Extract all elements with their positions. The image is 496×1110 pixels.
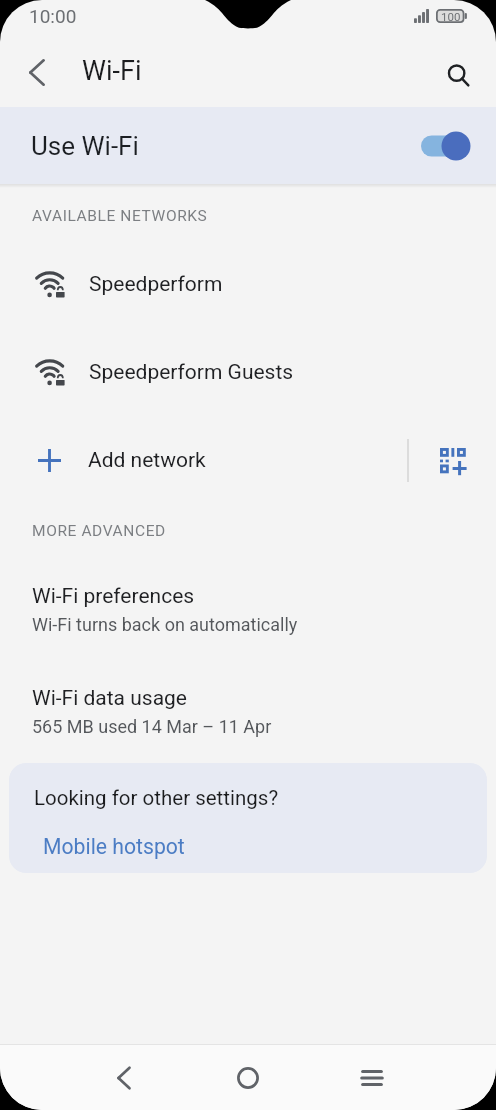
staticText: Mobile hotspot [43, 834, 185, 859]
button[interactable]: Speedperform [0, 240, 496, 328]
staticText: Wi-Fi preferences [32, 584, 195, 609]
staticText: Use Wi-Fi [31, 131, 421, 161]
staticText: Wi-Fi turns back on automatically [32, 614, 298, 635]
button[interactable]: Scan QR code to add network [409, 416, 496, 504]
button[interactable]: Looking for other settings? [9, 763, 487, 873]
staticText: Speedperform [89, 272, 223, 297]
button[interactable]: Home [216, 1045, 280, 1110]
staticText: 565 MB used 14 Mar – 11 Apr [32, 716, 272, 737]
button[interactable]: Speedperform Guests [0, 328, 496, 416]
staticText: 10:00 [29, 5, 77, 27]
staticText: Wi-Fi [82, 55, 142, 87]
staticText: MORE ADVANCED [32, 522, 166, 540]
button[interactable]: Wi-Fi data usage [0, 660, 496, 762]
staticText: Looking for other settings? [34, 786, 279, 810]
button[interactable]: Recent apps [340, 1045, 404, 1110]
staticText: AVAILABLE NETWORKS [32, 207, 208, 225]
button[interactable]: Add network [0, 416, 407, 504]
button[interactable]: Back [92, 1045, 156, 1110]
staticText: Speedperform Guests [89, 360, 294, 385]
staticText: 100 [441, 10, 461, 23]
button[interactable]: Wi-Fi preferences [0, 558, 496, 660]
button[interactable]: Navigate up [11, 46, 63, 98]
staticText: Wi-Fi data usage [32, 686, 187, 711]
button[interactable]: Use Wi-Fi [0, 107, 496, 184]
button[interactable]: Search [433, 50, 485, 102]
staticText: Add network [88, 448, 206, 473]
